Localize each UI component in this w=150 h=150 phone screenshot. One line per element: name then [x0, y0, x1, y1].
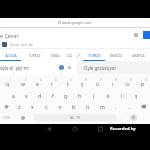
button[interactable]: l: [115, 89, 129, 101]
staticText: e: [36, 81, 39, 88]
staticText: ?123: [3, 116, 10, 120]
button[interactable]: Swap languages: [65, 49, 74, 61]
staticText: 3: [40, 78, 42, 82]
button[interactable]: a: [7, 89, 20, 101]
button[interactable]: c: [39, 101, 53, 112]
button[interactable]: 5: [60, 77, 75, 89]
staticText: d: [38, 93, 42, 100]
staticText: t: [67, 81, 69, 88]
staticText: TÜRKÇE: [28, 53, 41, 57]
staticText: 5: [70, 78, 72, 82]
button[interactable]: 6: [75, 77, 90, 89]
button[interactable]: m: [95, 101, 109, 112]
staticText: h: [78, 93, 82, 100]
staticText: Recorded by: [110, 126, 136, 132]
staticText: 0: [145, 78, 147, 82]
staticText: .: [129, 103, 131, 110]
staticText: www.google.com: [62, 20, 92, 25]
button[interactable]: 0: [135, 77, 150, 89]
button[interactable]: g: [59, 89, 73, 101]
staticText: 7: [100, 78, 102, 82]
staticText: .: [121, 115, 123, 120]
staticText: o: [126, 81, 130, 88]
staticText: v: [59, 103, 62, 110]
button[interactable]: ?123: [0, 112, 12, 123]
button[interactable]: v: [53, 101, 67, 112]
button[interactable]: Backspace: [137, 101, 150, 112]
button[interactable]: .: [123, 101, 137, 112]
button[interactable]: 2: [15, 77, 30, 89]
staticText: İNGİL.: [51, 53, 61, 57]
staticText: n: [86, 103, 90, 110]
staticText: 1: [10, 78, 12, 82]
button[interactable]: 4: [45, 77, 60, 89]
staticText: 9: [130, 78, 132, 82]
button[interactable]: ş: [129, 89, 143, 101]
staticText: TÜRKÇE: [88, 53, 101, 57]
button[interactable]: İNGİLİZ: [105, 49, 127, 61]
button[interactable]: b: [67, 101, 81, 112]
button[interactable]: Shift: [0, 101, 13, 112]
staticText: İNGİLİZ: [110, 53, 122, 57]
button[interactable]: Edit: [74, 49, 83, 61]
staticText: ARAPÇA: [132, 53, 145, 57]
button[interactable]: k: [101, 89, 115, 101]
button[interactable]: n: [81, 101, 95, 112]
button[interactable]: x: [26, 101, 39, 112]
button[interactable]: 8: [105, 77, 120, 89]
staticText: a: [12, 93, 15, 100]
staticText: ş: [135, 93, 138, 100]
button[interactable]: 1: [0, 77, 15, 89]
button[interactable]: 3: [30, 77, 45, 89]
staticText: s: [25, 93, 28, 100]
button[interactable]: AZ - TR: [33, 114, 117, 121]
button[interactable]: 9: [120, 77, 135, 89]
staticText: g: [64, 93, 68, 100]
staticText: q: [6, 81, 10, 88]
staticText: r: [51, 81, 54, 88]
staticText: f: [52, 93, 54, 100]
button[interactable]: s: [20, 89, 33, 101]
staticText: ı: [112, 81, 114, 88]
staticText: u: [96, 81, 100, 88]
staticText: m: [100, 103, 105, 110]
staticText: 8: [115, 78, 117, 82]
staticText: 4: [55, 78, 57, 82]
button[interactable]: TÜRKÇE: [83, 49, 105, 61]
staticText: y: [81, 81, 84, 88]
staticText: 6: [85, 78, 87, 82]
staticText: j: [93, 93, 95, 100]
staticText: Öyle gözüküyor: [84, 65, 117, 71]
button[interactable]: 7: [90, 77, 105, 89]
staticText: c: [45, 103, 48, 110]
staticText: AZ - TR: [70, 116, 81, 120]
button[interactable]: ,: [109, 101, 123, 112]
button[interactable]: h: [73, 89, 87, 101]
staticText: p: [141, 81, 145, 88]
staticText: ALGILA: [5, 53, 17, 57]
button[interactable]: Listen: [59, 65, 64, 70]
button[interactable]: Emoji: [12, 112, 33, 123]
button[interactable]: f: [46, 89, 59, 101]
staticText: l: [121, 93, 123, 100]
button[interactable]: Search: [126, 112, 141, 123]
staticText: e Çeviri: [0, 32, 19, 39]
staticText: Çeviri ara da: [10, 42, 33, 47]
button[interactable]: ALGILA: [0, 49, 21, 61]
staticText: ,: [115, 103, 117, 110]
staticText: 2: [25, 78, 27, 82]
button[interactable]: İNGİL.: [47, 49, 65, 61]
button[interactable]: j: [87, 89, 101, 101]
staticText: w: [21, 81, 25, 88]
button[interactable]: z: [13, 101, 26, 112]
button[interactable]: TÜRKÇE: [21, 49, 47, 61]
staticText: b: [72, 103, 76, 110]
staticText: öyle bi' şey mi: [0, 65, 29, 71]
staticText: x: [31, 103, 34, 110]
button[interactable]: d: [33, 89, 46, 101]
button[interactable]: ARAPÇA: [127, 49, 149, 61]
